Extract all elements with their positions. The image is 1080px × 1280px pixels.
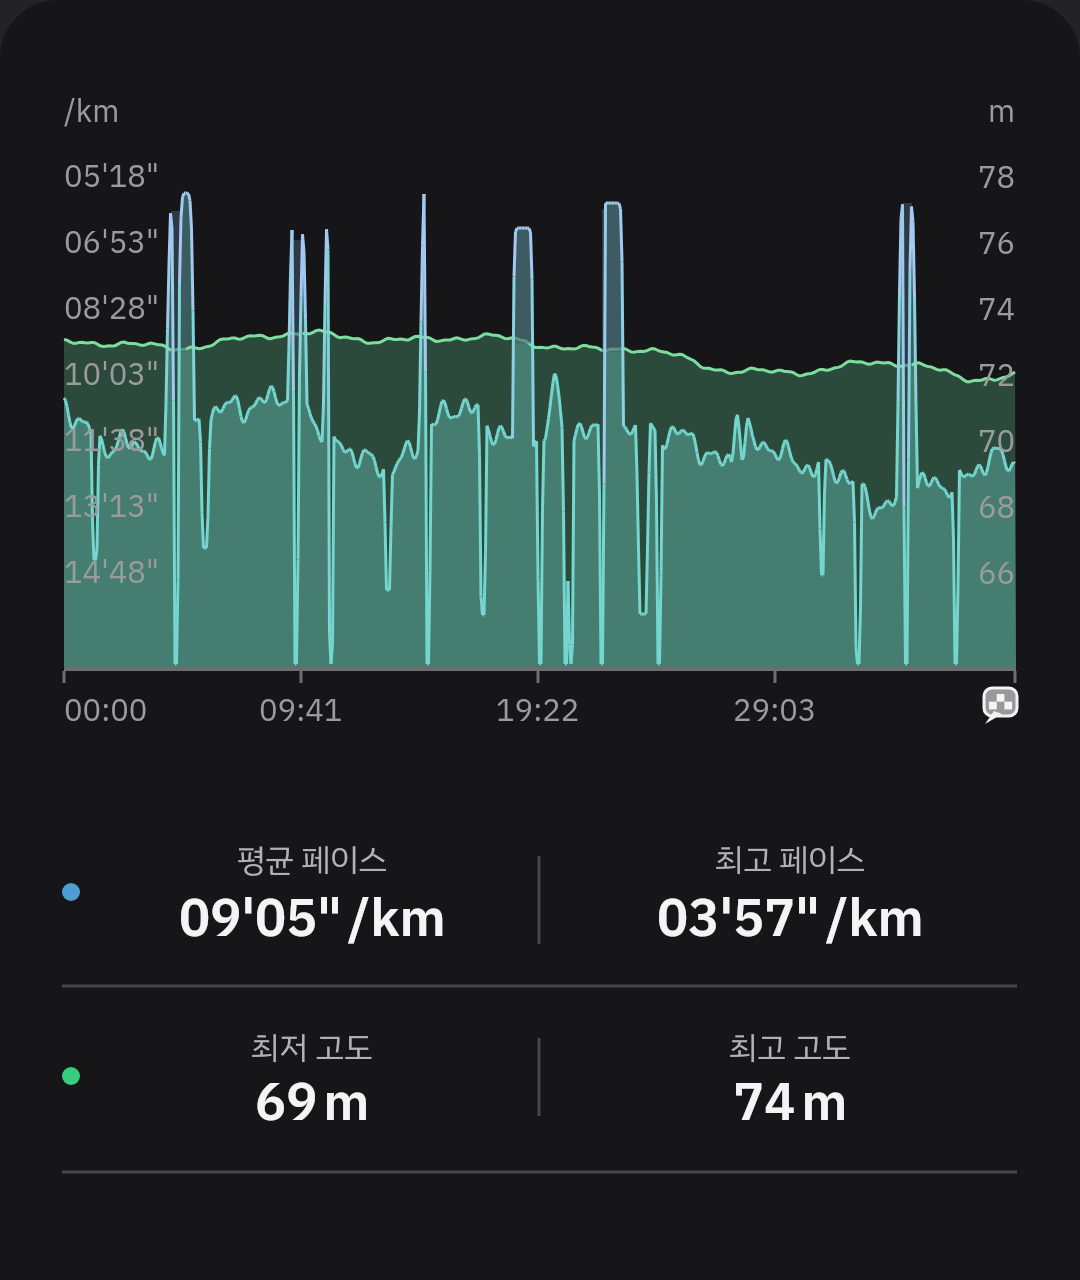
staticText: 78 — [978, 154, 1016, 201]
staticText: 03'57" /km — [657, 880, 924, 948]
staticText: 69 m — [255, 1064, 370, 1132]
staticText: 66 — [978, 550, 1016, 597]
staticText: 68 — [978, 484, 1016, 531]
staticText: 최저 고도 — [251, 1024, 373, 1072]
staticText: 05'18" — [64, 153, 159, 200]
staticText: 19:22 — [496, 687, 580, 734]
staticText: 29:03 — [733, 687, 817, 734]
staticText: 09'05" /km — [179, 880, 446, 948]
staticText: /km — [64, 88, 120, 135]
staticText: 70 — [978, 418, 1016, 465]
staticText: 06'53" — [64, 219, 159, 266]
staticText: 72 — [978, 352, 1016, 399]
staticText: 10'03" — [64, 351, 159, 398]
staticText: 08'28" — [64, 285, 159, 332]
staticText: 00:00 — [64, 687, 148, 734]
staticText: 11'38" — [64, 417, 159, 464]
staticText: 14'48" — [64, 549, 159, 596]
staticText: 평균 페이스 — [237, 836, 388, 884]
staticText: 74 m — [733, 1064, 848, 1132]
staticText: 09:41 — [259, 687, 343, 734]
button[interactable] — [980, 684, 1024, 728]
staticText: m — [988, 88, 1016, 135]
staticText: 74 — [978, 286, 1016, 333]
staticText: 13'13" — [64, 483, 159, 530]
staticText: 76 — [978, 220, 1016, 267]
staticText: 최고 페이스 — [715, 836, 866, 884]
staticText: 최고 고도 — [729, 1024, 851, 1072]
